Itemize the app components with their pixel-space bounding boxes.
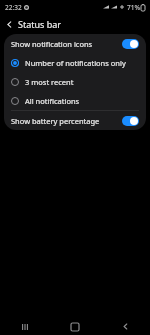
button[interactable]: Home xyxy=(50,318,100,335)
button[interactable]: Back xyxy=(0,15,18,33)
button[interactable]: 3 most recent xyxy=(4,72,146,91)
staticText: Show notification icons xyxy=(11,39,122,49)
button[interactable]: Back xyxy=(100,318,150,335)
button[interactable]: Number of notifications only xyxy=(4,53,146,72)
staticText: Show battery percentage xyxy=(11,116,122,126)
button[interactable]: All notifications xyxy=(4,91,146,110)
staticText: 22:32 xyxy=(5,3,22,12)
staticText: 3 most recent xyxy=(25,77,74,87)
staticText: Status bar xyxy=(18,18,62,30)
button[interactable]: Show battery percentage xyxy=(4,111,146,130)
staticText: All notifications xyxy=(25,96,80,106)
button[interactable]: Recents xyxy=(0,318,50,335)
staticText: Number of notifications only xyxy=(25,58,126,68)
button[interactable]: Show notification icons xyxy=(4,34,146,53)
staticText: 71% xyxy=(127,3,140,12)
